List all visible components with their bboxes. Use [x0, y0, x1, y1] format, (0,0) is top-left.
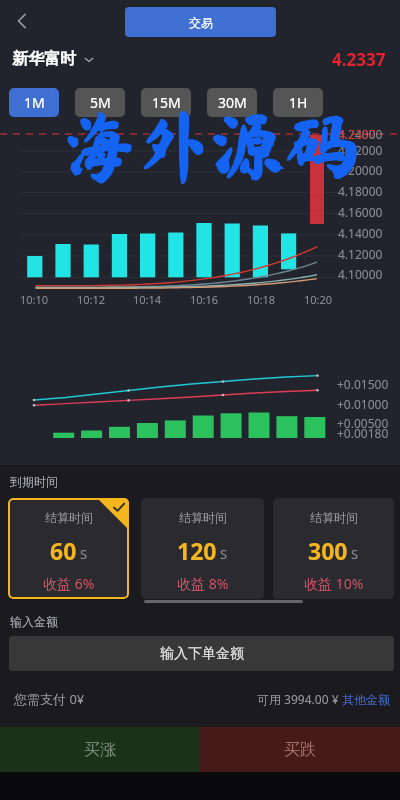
staticText: S — [80, 545, 88, 563]
staticText: +0.00500 — [337, 415, 389, 431]
staticText: 30M — [218, 93, 247, 112]
staticText: 1H — [289, 93, 308, 112]
button[interactable]: 买跌 — [200, 727, 400, 772]
staticText: 5M — [90, 93, 111, 112]
staticText: 4.2337 — [338, 126, 376, 142]
staticText: 输入金额 — [10, 614, 58, 629]
staticText: 10:18 — [247, 292, 276, 307]
button[interactable]: 结算时间 — [141, 498, 264, 599]
staticText: +0.01500 — [337, 376, 389, 392]
button[interactable]: 结算时间 — [273, 498, 394, 599]
staticText: 4.16000 — [338, 204, 383, 220]
staticText: 300 — [308, 535, 348, 566]
staticText: 买涨 — [84, 740, 116, 760]
staticText: 4.22000 — [338, 142, 383, 158]
button[interactable]: 其他金额 — [342, 692, 390, 707]
staticText: 4.2337 — [332, 48, 386, 71]
button[interactable]: 1H — [273, 88, 323, 117]
staticText: 120 — [177, 535, 217, 566]
staticText: 到期时间 — [10, 474, 58, 489]
staticText: 您需支付 0¥ — [14, 690, 85, 708]
staticText: 10:20 — [304, 292, 333, 307]
button[interactable]: 输入下单金额 — [9, 636, 394, 671]
staticText: 10:14 — [133, 292, 162, 307]
staticText: 海外源码 — [61, 110, 357, 184]
staticText: 10:10 — [20, 292, 49, 307]
staticText: 4.12000 — [338, 246, 383, 262]
staticText: 买跌 — [284, 740, 316, 760]
button[interactable]: Back — [6, 5, 38, 37]
staticText: 结算时间 — [179, 510, 227, 525]
staticText: 60 — [50, 535, 77, 566]
staticText: S — [351, 545, 359, 563]
button[interactable]: 1M — [9, 88, 59, 117]
staticText: 新华富时 — [12, 49, 76, 69]
staticText: +0.01000 — [337, 396, 389, 412]
staticText: 收益 8% — [177, 574, 229, 593]
button[interactable]: 新华富时 — [12, 49, 95, 69]
staticText: 收益 6% — [43, 574, 95, 593]
staticText: 结算时间 — [310, 510, 358, 525]
button[interactable]: 5M — [75, 88, 125, 117]
staticText: 4.18000 — [338, 183, 383, 199]
button[interactable]: 15M — [141, 88, 191, 117]
staticText: 4.24000 — [338, 126, 383, 142]
staticText: 10:16 — [190, 292, 219, 307]
staticText: 4.10000 — [338, 266, 383, 282]
staticText: 结算时间 — [45, 510, 93, 525]
staticText: 4.14000 — [338, 225, 383, 241]
button[interactable]: 30M — [207, 88, 257, 117]
staticText: 交易 — [189, 15, 213, 30]
staticText: 输入下单金额 — [160, 645, 244, 663]
staticText: 1M — [24, 93, 45, 112]
staticText: 15M — [152, 93, 181, 112]
staticText: +0.00180 — [337, 425, 389, 441]
button[interactable]: 结算时间 — [8, 498, 129, 599]
staticText: 10:12 — [77, 292, 106, 307]
staticText: 可用 3994.00 ¥ — [257, 691, 342, 707]
button[interactable]: 买涨 — [0, 727, 200, 772]
staticText: 4.20000 — [338, 162, 383, 178]
button[interactable]: 交易 — [125, 7, 276, 37]
staticText: S — [220, 545, 228, 563]
staticText: 收益 10% — [304, 574, 364, 593]
